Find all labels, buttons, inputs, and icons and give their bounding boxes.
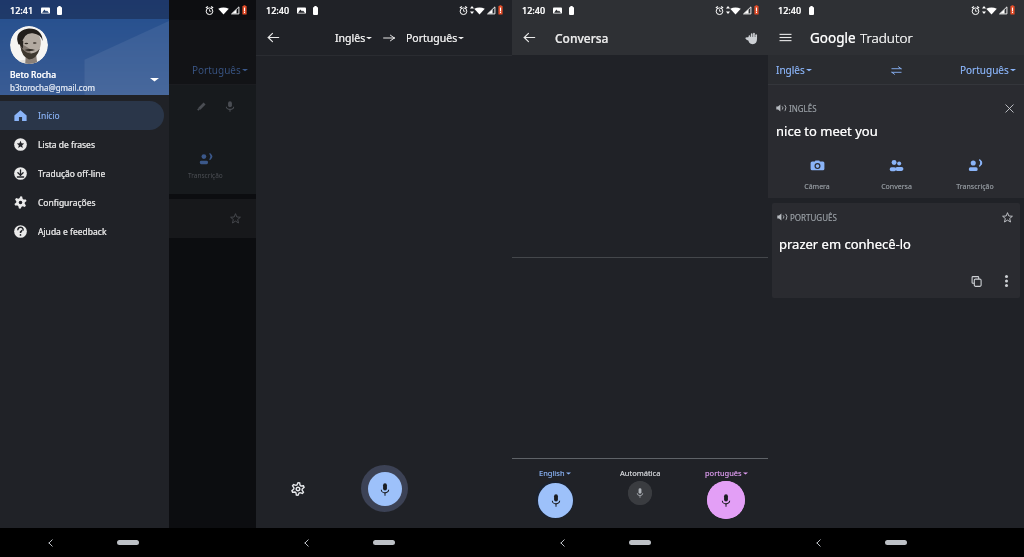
staticText: Português	[192, 63, 241, 77]
button[interactable]: Back	[256, 20, 291, 55]
button[interactable]: Start microphone	[361, 465, 408, 512]
button[interactable]: Configurações	[0, 188, 164, 217]
button[interactable]: Open navigation menu	[768, 20, 803, 55]
staticText: 12:40	[522, 4, 546, 16]
button[interactable]: Tradução off-line	[0, 159, 164, 188]
staticText: INGLÊS	[789, 103, 817, 114]
button[interactable]: Home	[373, 540, 395, 545]
button[interactable]: Conversa	[866, 158, 926, 192]
button[interactable]: Português	[403, 28, 467, 48]
button[interactable]: Expand account list	[147, 72, 161, 86]
staticText: Configurações	[38, 197, 96, 209]
staticText: nice to meet you	[776, 122, 878, 140]
button[interactable]: Transcrição	[945, 158, 1005, 192]
staticText: Transcrição	[188, 171, 223, 180]
button[interactable]: Câmera	[787, 158, 847, 192]
button[interactable]: Save translation	[999, 209, 1015, 225]
staticText: Início	[38, 110, 60, 122]
button[interactable]: Copy translation	[967, 272, 985, 290]
staticText: 12:40	[778, 4, 802, 16]
button[interactable]: Swap languages	[884, 58, 908, 82]
button[interactable]: Settings	[288, 479, 308, 499]
staticText: English	[539, 468, 565, 478]
staticText: Conversa	[555, 30, 609, 46]
staticText: Inglês	[776, 63, 805, 77]
button[interactable]: Back	[512, 20, 547, 55]
staticText: português	[705, 468, 742, 478]
button[interactable]: Clear text	[1001, 100, 1017, 116]
staticText: b3torocha@gmail.com	[10, 82, 95, 93]
button[interactable]: More options	[997, 272, 1015, 290]
staticText: Google	[810, 29, 860, 47]
button[interactable]: Home	[885, 540, 907, 545]
button[interactable]: Início	[0, 101, 164, 130]
button[interactable]: Manual input	[733, 20, 768, 55]
button[interactable]: português	[681, 459, 771, 519]
button[interactable]: Inglês	[768, 55, 884, 84]
button[interactable]: Lista de frases	[0, 130, 164, 159]
staticText: Tradutor	[860, 29, 913, 47]
staticText: Beto Rocha	[10, 69, 57, 81]
button[interactable]: Home	[117, 540, 139, 545]
staticText: Inglês	[335, 31, 366, 45]
button[interactable]: Automática	[595, 459, 685, 505]
staticText: Ajuda e feedback	[38, 226, 107, 238]
button[interactable]: Português	[908, 55, 1024, 84]
staticText: 12:41	[10, 4, 34, 16]
staticText: Tradução off-line	[38, 168, 106, 180]
staticText: Conversa	[881, 182, 912, 192]
staticText: prazer em conhecê-lo	[779, 235, 911, 253]
staticText: Automática	[620, 468, 661, 478]
staticText: PORTUGUÊS	[790, 212, 837, 223]
button[interactable]: Ajuda e feedback	[0, 217, 164, 246]
staticText: 12:40	[266, 4, 290, 16]
staticText: Português	[406, 31, 458, 45]
staticText: Lista de frases	[38, 139, 95, 151]
button[interactable]: Back	[300, 536, 314, 550]
button[interactable]: Home	[629, 540, 651, 545]
button[interactable]: English	[510, 459, 600, 519]
button[interactable]: Back	[44, 536, 58, 550]
staticText: Transcrição	[956, 182, 994, 192]
button[interactable]: Back	[812, 536, 826, 550]
staticText: Português	[960, 63, 1009, 77]
staticText: Câmera	[804, 182, 830, 192]
button[interactable]: Back	[556, 536, 570, 550]
button[interactable]: Inglês	[332, 28, 375, 48]
